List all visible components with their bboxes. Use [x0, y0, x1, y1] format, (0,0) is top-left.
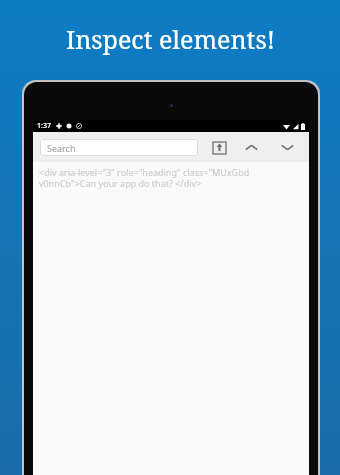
- staticText: Inspect elements!: [66, 22, 275, 56]
- button[interactable]: Open in app: [208, 136, 230, 158]
- button[interactable]: Search: [40, 139, 198, 156]
- button[interactable]: Next result: [276, 136, 298, 158]
- staticText: <div aria-level="3" role="heading" class…: [39, 166, 303, 190]
- staticText: Search: [47, 142, 76, 154]
- button[interactable]: Previous result: [240, 136, 262, 158]
- staticText: 1:37: [37, 121, 51, 131]
